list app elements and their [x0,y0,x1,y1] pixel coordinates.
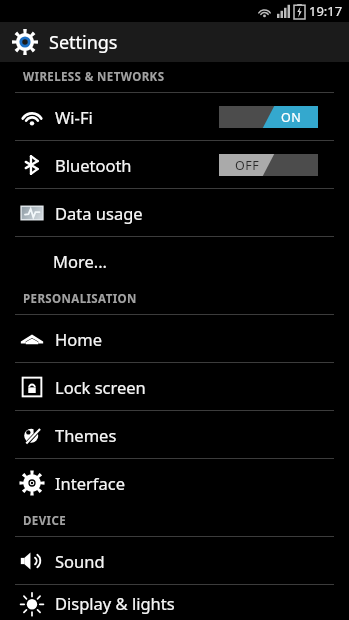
staticText: Display & lights [55,592,175,614]
button[interactable]: Home [0,315,349,362]
button[interactable]: Display & lights [0,585,349,620]
staticText: Bluetooth [55,154,132,176]
staticText: Lock screen [55,376,146,398]
staticText: Sound [55,550,105,572]
staticText: ON [281,109,302,126]
button[interactable]: Turn off [219,106,318,128]
staticText: WIRELESS & NETWORKS [23,69,165,85]
button[interactable]: Wi-Fi [0,93,349,140]
button[interactable]: Interface [0,459,349,506]
staticText: 19:17 [309,2,343,20]
button[interactable]: Bluetooth [0,141,349,188]
staticText: OFF [235,157,260,174]
button[interactable]: Themes [0,411,349,458]
staticText: Data usage [55,202,143,224]
staticText: Wi-Fi [55,106,93,128]
button[interactable]: Settings [0,22,349,62]
staticText: More... [53,250,108,272]
staticText: Themes [55,424,117,446]
button[interactable]: Sound [0,537,349,584]
button[interactable]: Data usage [0,189,349,236]
staticText: Interface [55,472,126,494]
staticText: Home [55,328,102,350]
button[interactable]: More... [0,237,349,284]
button[interactable]: Lock screen [0,363,349,410]
staticText: DEVICE [23,513,67,529]
button[interactable]: Turn on [219,154,318,176]
staticText: PERSONALISATION [23,291,137,307]
staticText: Settings [49,30,118,55]
